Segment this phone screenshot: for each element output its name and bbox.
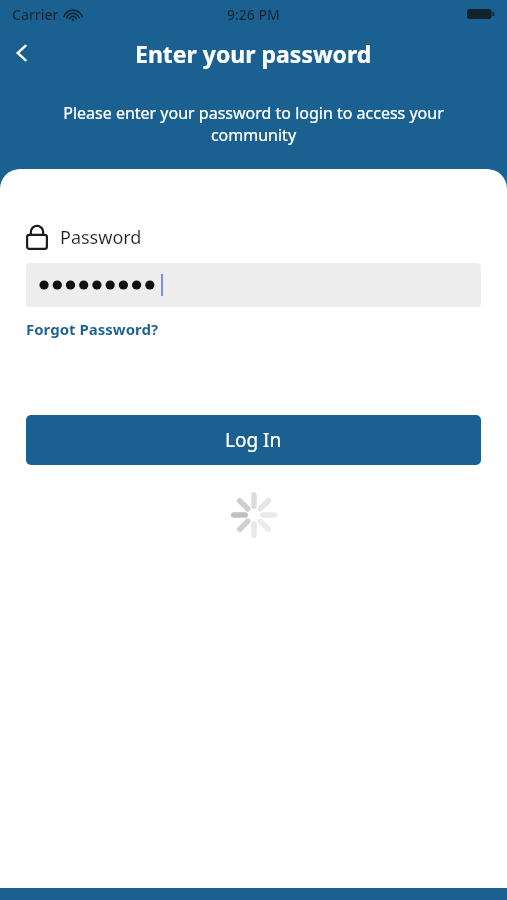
button[interactable] <box>26 263 481 307</box>
staticText: Password <box>60 225 142 250</box>
staticText: Please enter your password to login to a… <box>22 102 485 146</box>
staticText: Log In <box>225 427 282 453</box>
button[interactable]: Back <box>0 31 44 75</box>
button[interactable]: Log In <box>26 415 481 465</box>
staticText: Forgot Password? <box>26 319 159 339</box>
staticText: 9:26 PM <box>227 5 280 24</box>
button[interactable]: Forgot Password? <box>26 319 159 339</box>
staticText: Enter your password <box>135 38 372 69</box>
staticText: Carrier <box>12 5 59 24</box>
